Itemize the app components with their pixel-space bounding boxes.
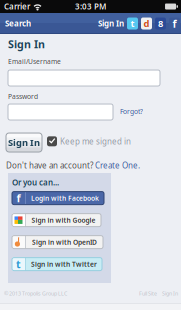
- staticText: Sign In: [8, 37, 45, 51]
- staticText: 8: [158, 17, 163, 30]
- staticText: Forgot?: [120, 107, 143, 116]
- staticText: d: [143, 17, 149, 30]
- staticText: Sign in with Twitter: [31, 260, 97, 269]
- button[interactable]: Full Site: [139, 290, 157, 297]
- button[interactable]: Search: [0, 13, 36, 34]
- button[interactable]: Sign In: [0, 0, 42, 152]
- staticText: Email/Username: [8, 57, 61, 66]
- staticText: Full Site: [139, 290, 157, 297]
- staticText: Sign In: [98, 18, 124, 29]
- staticText: 3:03 PM: [75, 1, 106, 12]
- button[interactable]: Keep me signed in: [0, 0, 131, 147]
- staticText: Sign In: [8, 136, 40, 149]
- button[interactable]: f: [12, 192, 104, 205]
- button[interactable]: Sign in with OpenID: [12, 236, 103, 249]
- staticText: Or you can...: [12, 177, 59, 188]
- button[interactable]: t: [12, 258, 102, 271]
- button[interactable]: Twitter: [127, 17, 138, 29]
- staticText: t: [16, 257, 21, 271]
- staticText: Sign In: [162, 290, 178, 297]
- staticText: Carrier: [4, 1, 30, 12]
- staticText: f: [172, 16, 176, 31]
- button[interactable]: Digg: [141, 17, 152, 29]
- staticText: f: [16, 191, 20, 205]
- staticText: Sign in with Google: [31, 216, 95, 225]
- button[interactable]: Facebook: [169, 17, 180, 29]
- button[interactable]: Create One.: [95, 160, 140, 171]
- staticText: © 2013 Tropolis Group LLC: [4, 290, 67, 297]
- button[interactable]: Sign In: [95, 13, 127, 34]
- staticText: Login with Facebook: [31, 194, 99, 203]
- button[interactable]: Sign In: [157, 290, 178, 297]
- button[interactable]: Google Plus: [155, 17, 166, 29]
- button[interactable]: Sign in with Google: [12, 214, 101, 227]
- staticText: Create One.: [95, 160, 140, 171]
- staticText: Sign in with OpenID: [32, 238, 97, 247]
- button[interactable]: Forgot?: [0, 0, 143, 116]
- staticText: Search: [5, 18, 31, 29]
- staticText: Password: [8, 92, 38, 101]
- staticText: t: [130, 17, 134, 30]
- staticText: Keep me signed in: [60, 136, 131, 147]
- staticText: Don't have an account?: [6, 160, 93, 171]
